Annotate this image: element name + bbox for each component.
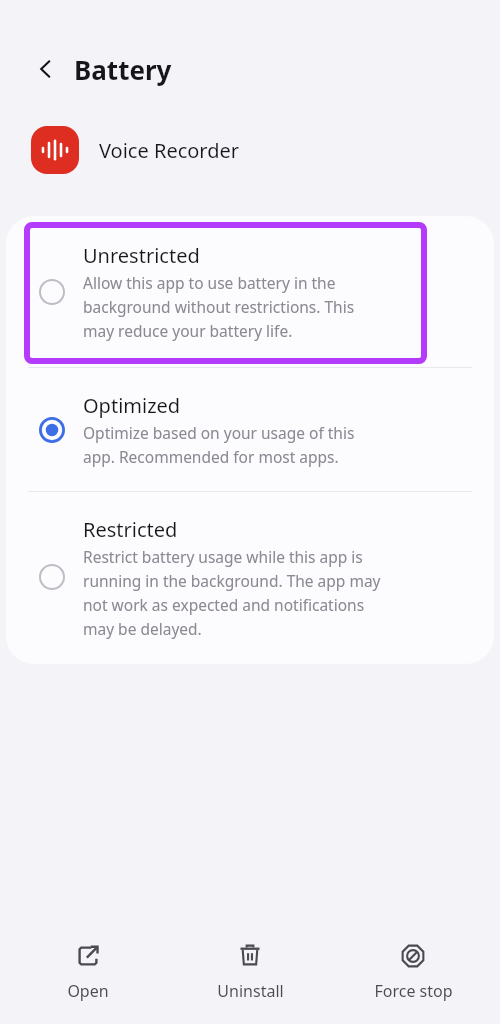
staticText: Battery — [74, 52, 172, 87]
button[interactable]: Back — [28, 51, 64, 87]
staticText: Allow this app to use battery in the bac… — [83, 272, 355, 341]
staticText: Uninstall — [217, 980, 284, 1002]
staticText: Optimize based on your usage of this app… — [83, 422, 355, 467]
staticText: Voice Recorder — [99, 137, 240, 164]
staticText: Restrict battery usage while this app is… — [83, 546, 381, 639]
staticText: Open — [67, 980, 109, 1002]
staticText: Force stop — [374, 980, 453, 1002]
button[interactable]: Unrestricted — [6, 216, 494, 367]
button[interactable]: Optimized — [6, 368, 494, 491]
button[interactable]: Open — [13, 936, 163, 1008]
button[interactable]: Restricted — [6, 492, 494, 662]
button[interactable]: Uninstall — [175, 936, 325, 1008]
staticText: Unrestricted — [83, 242, 200, 269]
button[interactable]: Voice Recorder — [0, 120, 500, 180]
staticText: Optimized — [83, 392, 181, 419]
button[interactable]: Force stop — [338, 936, 488, 1008]
staticText: Restricted — [83, 516, 178, 543]
